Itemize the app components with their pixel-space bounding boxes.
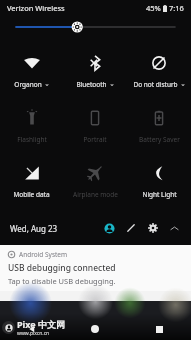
staticText: Organon [14,80,42,89]
staticText: Bluetooth [76,80,107,89]
staticText: 45% [146,3,161,13]
button[interactable]: Android System [0,245,191,291]
button[interactable]: Airplane mode [63,152,127,207]
button[interactable]: Back [0,318,63,340]
button[interactable]: Brightness [0,16,191,38]
staticText: Pixe 中文网 [17,318,66,330]
button[interactable]: Mobile data [0,152,63,207]
staticText: Android System [19,250,68,259]
staticText: Battery Saver [139,135,180,144]
button[interactable]: Portrait [63,97,127,152]
button[interactable]: Bluetooth [63,42,127,97]
staticText: Portrait [83,135,107,144]
button[interactable]: Organon [0,42,63,97]
button[interactable]: Home [63,318,127,340]
button[interactable]: Night Light [127,152,191,207]
staticText: USB debugging connected [8,262,116,274]
staticText: Night Light [142,190,177,199]
button[interactable]: User [100,219,118,237]
staticText: Wed, Aug 23 [10,223,58,234]
staticText: Flashlight [17,135,47,144]
staticText: www.pixcn.cn [17,330,50,337]
button[interactable]: Collapse [165,219,183,237]
button[interactable]: Battery Saver [127,97,191,152]
staticText: Tap to disable USB debugging. [8,276,116,286]
staticText: Mobile data [13,190,50,199]
staticText: Verizon Wireless [7,3,65,13]
button[interactable]: Settings [144,219,162,237]
staticText: 7:16 [169,3,184,13]
button[interactable]: Flashlight [0,97,63,152]
button[interactable]: Do not disturb [127,42,191,97]
staticText: Do not disturb [133,80,178,89]
button[interactable]: Edit [122,219,140,237]
button[interactable]: Recent apps [127,318,191,340]
staticText: Airplane mode [73,190,118,199]
